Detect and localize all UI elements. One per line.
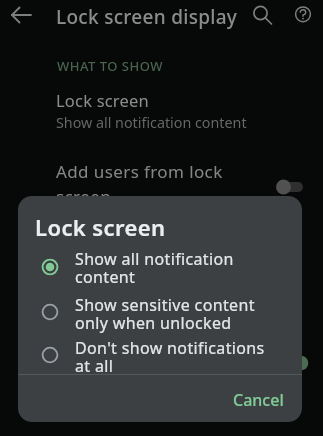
button[interactable]: Add users from lock: [0, 158, 323, 206]
staticText: Cancel: [233, 389, 284, 411]
button[interactable]: [249, 2, 275, 28]
staticText: Show all notification content: [75, 248, 234, 288]
staticText: Don't show notifications at all: [75, 337, 265, 377]
staticText: WHAT TO SHOW: [57, 57, 164, 75]
staticText: Lock screen display: [56, 4, 238, 30]
staticText: Show all notification content: [56, 113, 247, 132]
staticText: Show sensitive content only when unlocke…: [75, 294, 255, 334]
button[interactable]: Show all notification content: [18, 248, 302, 290]
staticText: Add users from lock: [56, 160, 223, 183]
button[interactable]: Cancel: [218, 380, 294, 416]
button[interactable]: [293, 3, 317, 27]
button[interactable]: Lock screen: [0, 86, 323, 136]
button[interactable]: Show sensitive content only when unlocke…: [18, 292, 302, 334]
button[interactable]: [8, 3, 36, 31]
button[interactable]: Don't show notifications at all: [18, 335, 302, 375]
staticText: Lock screen: [35, 212, 166, 242]
staticText: screen: [56, 185, 112, 208]
staticText: Lock screen: [56, 89, 149, 111]
